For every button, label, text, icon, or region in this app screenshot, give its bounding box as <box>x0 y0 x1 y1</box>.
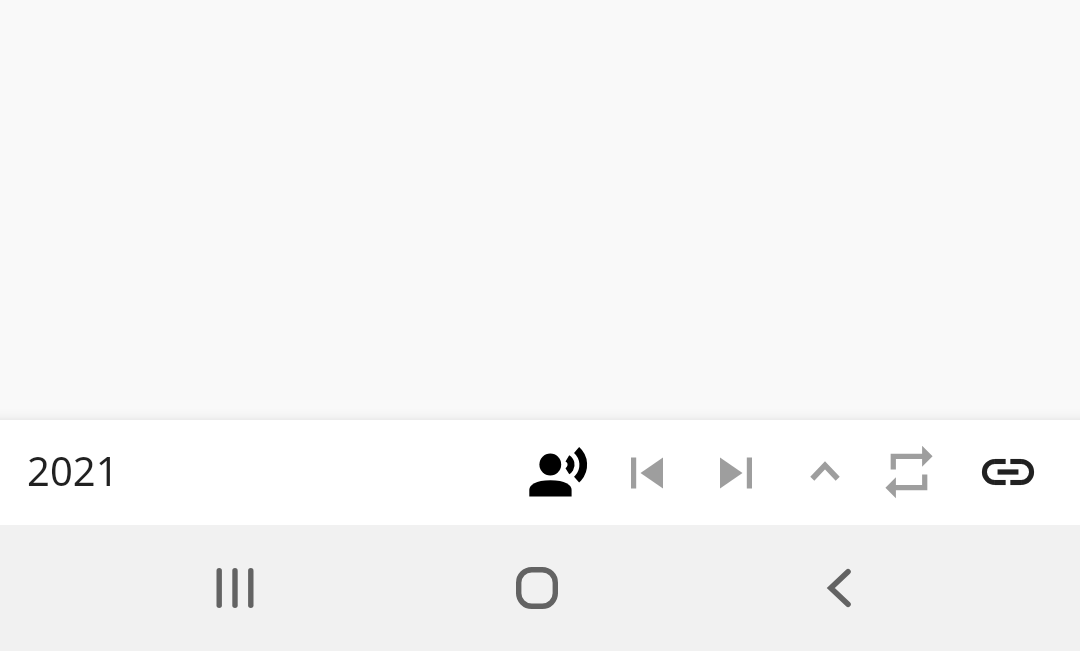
button[interactable]: Link <box>972 436 1044 508</box>
button[interactable]: Home <box>482 533 592 643</box>
staticText: 2021 <box>27 443 119 497</box>
button[interactable]: Record voice over <box>522 436 594 508</box>
button[interactable]: Recents <box>180 533 290 643</box>
button[interactable]: Expand <box>789 436 861 508</box>
button[interactable]: Next <box>700 437 772 509</box>
button[interactable]: Previous <box>611 437 683 509</box>
button[interactable]: Back <box>784 533 894 643</box>
button[interactable]: Repeat <box>873 436 945 508</box>
button[interactable]: 2021 <box>0 420 135 525</box>
